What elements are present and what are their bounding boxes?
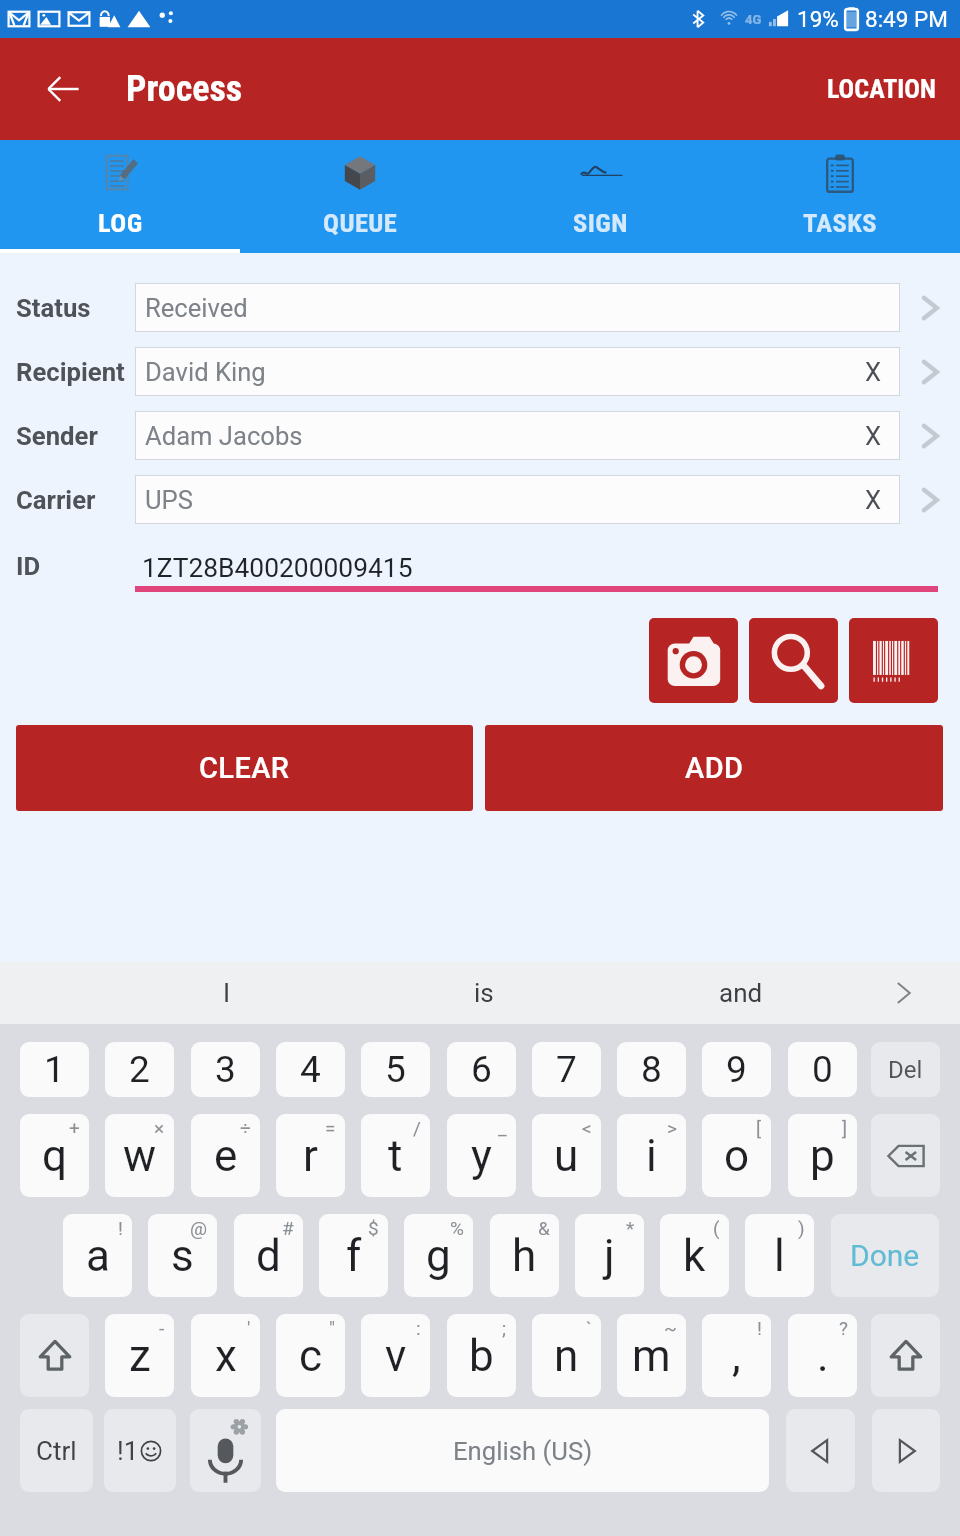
button[interactable]: Open Carrier — [900, 475, 960, 524]
button[interactable]: 8 — [617, 1042, 686, 1097]
staticText: : — [416, 1317, 421, 1339]
button[interactable]: Take photo — [649, 618, 738, 703]
button[interactable]: o — [702, 1114, 771, 1197]
staticText: s — [171, 1230, 194, 1282]
button[interactable]: f — [319, 1214, 388, 1297]
staticText: Ctrl — [36, 1436, 77, 1466]
button[interactable]: More suggestions — [869, 962, 937, 1024]
staticText: h — [512, 1230, 537, 1282]
button[interactable]: Move cursor right — [872, 1409, 940, 1492]
button[interactable]: I — [98, 962, 355, 1024]
button[interactable]: 1 — [20, 1042, 89, 1097]
button[interactable] — [871, 1314, 940, 1397]
staticText: X — [865, 421, 882, 451]
button[interactable]: Search — [749, 618, 838, 703]
staticText: p — [810, 1130, 835, 1182]
staticText: k — [683, 1230, 706, 1282]
button[interactable]: g — [404, 1214, 473, 1297]
staticText: !1 — [117, 1436, 139, 1466]
button[interactable]: z — [105, 1314, 174, 1397]
button[interactable]: r — [276, 1114, 345, 1197]
button[interactable]: CLEAR — [16, 725, 473, 811]
staticText: 1ZT28B400200009415 — [142, 553, 413, 584]
button[interactable]: is — [355, 962, 612, 1024]
button[interactable]: Scan barcode — [849, 618, 938, 703]
staticText: Del — [888, 1056, 923, 1084]
button[interactable]: x — [191, 1314, 260, 1397]
button[interactable]: Open Sender — [900, 411, 960, 460]
button[interactable]: s — [148, 1214, 217, 1297]
button[interactable]: Symbols and emoji — [104, 1409, 176, 1492]
button[interactable]: b — [447, 1314, 516, 1397]
button[interactable]: d — [234, 1214, 303, 1297]
staticText: ( — [713, 1217, 720, 1239]
button[interactable]: 9 — [702, 1042, 771, 1097]
staticText: i — [646, 1130, 657, 1182]
staticText: e — [214, 1130, 238, 1182]
button[interactable]: m — [617, 1314, 686, 1397]
staticText: m — [632, 1330, 671, 1382]
button[interactable]: l — [745, 1214, 814, 1297]
button[interactable]: w — [105, 1114, 174, 1197]
button[interactable]: ADD — [485, 725, 943, 811]
button[interactable]: LOCATION — [803, 38, 960, 140]
button[interactable]: 2 — [105, 1042, 174, 1097]
button[interactable]: k — [660, 1214, 729, 1297]
staticText: ] — [842, 1117, 848, 1139]
button[interactable]: c — [276, 1314, 345, 1397]
staticText: 0 — [812, 1048, 833, 1091]
button[interactable]: SIGN — [480, 140, 720, 253]
staticText: Sender — [16, 421, 98, 451]
staticText: English (US) — [453, 1436, 593, 1466]
button[interactable]: 4 — [276, 1042, 345, 1097]
button[interactable]: e — [191, 1114, 260, 1197]
button[interactable]: j — [575, 1214, 644, 1297]
button[interactable]: n — [532, 1314, 601, 1397]
button[interactable]: LOG — [0, 140, 240, 253]
staticText: % — [450, 1217, 464, 1239]
button[interactable]: 5 — [361, 1042, 430, 1097]
button[interactable]: Back — [0, 38, 126, 140]
button[interactable]: Open Recipient — [900, 347, 960, 396]
button[interactable]: Ctrl — [20, 1409, 93, 1492]
button[interactable]: p — [788, 1114, 857, 1197]
button[interactable]: Del — [871, 1042, 940, 1097]
staticText: ÷ — [240, 1117, 251, 1139]
button[interactable] — [871, 1114, 940, 1197]
button[interactable]: i — [617, 1114, 686, 1197]
staticText: ` — [586, 1317, 592, 1339]
staticText: $ — [368, 1217, 379, 1239]
button[interactable]: h — [490, 1214, 559, 1297]
staticText: f — [346, 1230, 362, 1282]
button[interactable]: 6 — [447, 1042, 516, 1097]
button[interactable]: and — [612, 962, 869, 1024]
button[interactable]: t — [361, 1114, 430, 1197]
button[interactable]: q — [20, 1114, 89, 1197]
button[interactable] — [20, 1314, 89, 1397]
staticText: ) — [798, 1217, 805, 1239]
button[interactable]: 3 — [191, 1042, 260, 1097]
staticText: . — [817, 1330, 829, 1382]
staticText: + — [69, 1117, 80, 1139]
staticText: Carrier — [16, 485, 96, 515]
staticText: ' — [247, 1317, 251, 1339]
button[interactable]: 7 — [532, 1042, 601, 1097]
button[interactable]: TASKS — [720, 140, 960, 253]
button[interactable]: Done — [831, 1214, 939, 1297]
staticText: r — [303, 1130, 318, 1182]
button[interactable]: u — [532, 1114, 601, 1197]
staticText: 3 — [215, 1048, 236, 1091]
staticText: ADD — [685, 751, 744, 785]
button[interactable]: v — [361, 1314, 430, 1397]
staticText: ! — [118, 1217, 123, 1239]
button[interactable]: English (US) — [276, 1409, 769, 1492]
button[interactable]: Open Status — [900, 283, 960, 332]
button[interactable]: , — [702, 1314, 771, 1397]
button[interactable]: Move cursor left — [786, 1409, 855, 1492]
button[interactable]: Voice input — [190, 1409, 261, 1492]
button[interactable]: 0 — [788, 1042, 857, 1097]
button[interactable]: a — [63, 1214, 132, 1297]
button[interactable]: . — [788, 1314, 857, 1397]
button[interactable]: QUEUE — [240, 140, 480, 253]
button[interactable]: y — [447, 1114, 516, 1197]
